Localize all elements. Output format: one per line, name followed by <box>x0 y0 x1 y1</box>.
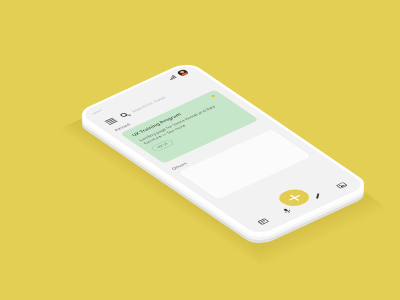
staticText: Landing page for Voltra Hostel and Ikea … <box>138 103 224 145</box>
button[interactable]: Add note <box>273 186 315 209</box>
staticText: Search for notes <box>130 95 167 113</box>
staticText: Pinned <box>113 122 132 132</box>
button[interactable]: Gallery <box>331 180 352 191</box>
button[interactable]: Notes <box>252 216 273 227</box>
staticText: UX Training Program <box>130 112 183 137</box>
staticText: UX UI <box>155 142 170 149</box>
button[interactable] <box>176 128 313 200</box>
button[interactable]: Menu <box>101 116 120 127</box>
button[interactable]: Microphone <box>276 205 297 216</box>
button[interactable]: Draw <box>307 191 328 202</box>
button[interactable]: UX UI <box>155 142 170 149</box>
staticText: Others <box>170 161 189 171</box>
button[interactable]: UX Training Program <box>119 89 259 164</box>
